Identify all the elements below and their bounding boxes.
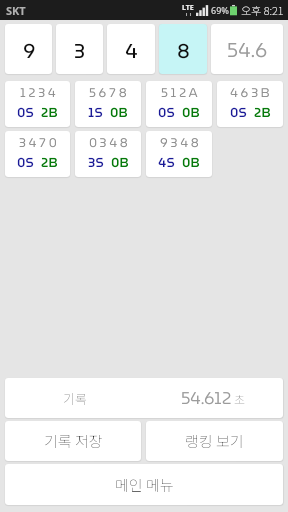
button[interactable]: 기록 [5,378,283,418]
button[interactable] [5,24,52,74]
staticText: 랭킹 보기 [185,430,244,452]
button[interactable]: 기록 저장 [5,421,141,461]
button[interactable] [5,131,70,177]
button[interactable] [217,81,283,127]
staticText: 69% [211,4,229,16]
button[interactable] [5,81,70,127]
staticText: 기록 저장 [44,430,103,452]
button[interactable] [56,24,103,74]
staticText: 오후 8:21 [241,2,284,18]
button[interactable] [159,24,207,74]
button[interactable] [211,24,283,74]
staticText: 메인 메뉴 [115,474,174,496]
button[interactable]: 랭킹 보기 [146,421,283,461]
button[interactable]: 메인 메뉴 [5,464,283,505]
staticText: 기록 [63,389,87,408]
button[interactable] [75,81,141,127]
button[interactable] [75,131,141,177]
staticText: 초 [234,390,246,407]
staticText: LTE [182,3,194,13]
button[interactable] [146,81,212,127]
button[interactable] [107,24,155,74]
staticText: SKT [6,3,26,18]
button[interactable] [146,131,212,177]
